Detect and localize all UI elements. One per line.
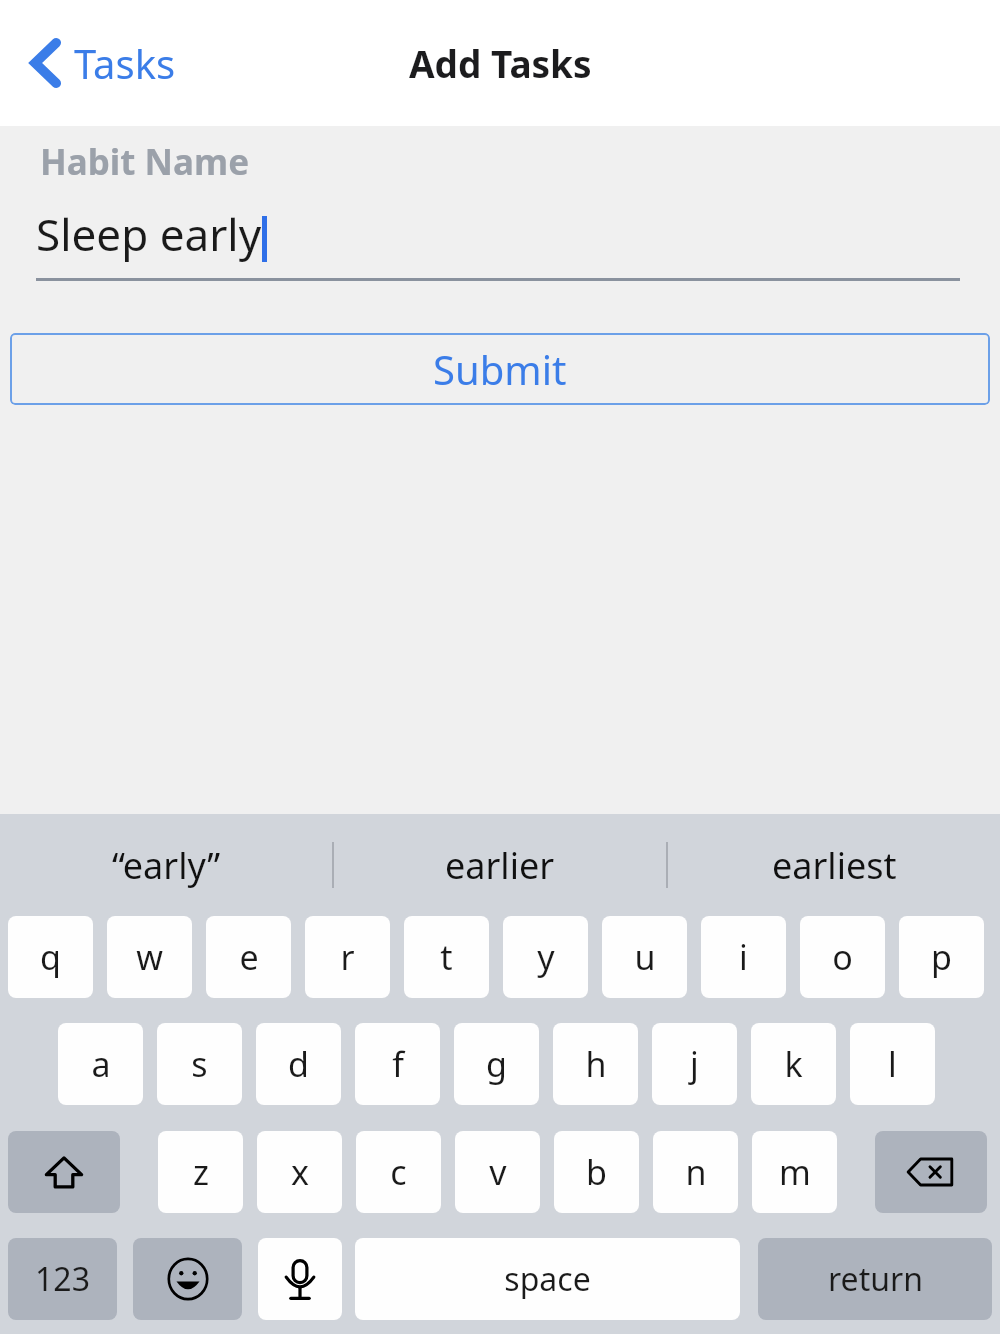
staticText: p bbox=[931, 934, 952, 980]
staticText: return bbox=[828, 1257, 923, 1301]
button[interactable]: h bbox=[553, 1023, 638, 1105]
staticText: w bbox=[136, 934, 163, 980]
staticText: i bbox=[739, 934, 748, 980]
button[interactable]: p bbox=[899, 916, 984, 998]
button[interactable]: space bbox=[355, 1238, 740, 1320]
button[interactable]: Backspace bbox=[875, 1131, 987, 1213]
button[interactable]: a bbox=[58, 1023, 143, 1105]
button[interactable]: return bbox=[758, 1238, 992, 1320]
button[interactable]: earlier bbox=[334, 814, 666, 916]
staticText: Sleep early bbox=[36, 204, 262, 264]
button[interactable]: g bbox=[454, 1023, 539, 1105]
button[interactable]: Shift bbox=[8, 1131, 120, 1213]
button[interactable]: v bbox=[455, 1131, 540, 1213]
staticText: y bbox=[537, 934, 555, 980]
staticText: d bbox=[288, 1041, 309, 1087]
staticText: k bbox=[784, 1041, 803, 1087]
button[interactable]: Dictation bbox=[258, 1238, 342, 1320]
staticText: j bbox=[690, 1041, 699, 1087]
button[interactable]: e bbox=[206, 916, 291, 998]
button[interactable]: i bbox=[701, 916, 786, 998]
staticText: r bbox=[340, 934, 355, 980]
button[interactable]: Emoji bbox=[133, 1238, 242, 1320]
button[interactable]: m bbox=[752, 1131, 837, 1213]
staticText: Habit Name bbox=[40, 138, 250, 186]
staticText: v bbox=[489, 1149, 507, 1195]
staticText: g bbox=[486, 1041, 507, 1087]
button[interactable]: z bbox=[158, 1131, 243, 1213]
staticText: x bbox=[291, 1149, 309, 1195]
staticText: f bbox=[392, 1041, 404, 1087]
button[interactable]: q bbox=[8, 916, 93, 998]
button[interactable]: 123 bbox=[8, 1238, 117, 1320]
button[interactable]: l bbox=[850, 1023, 935, 1105]
staticText: t bbox=[440, 934, 453, 980]
button[interactable]: s bbox=[157, 1023, 242, 1105]
button[interactable]: o bbox=[800, 916, 885, 998]
button[interactable]: Sleep early bbox=[36, 204, 960, 264]
button[interactable]: j bbox=[652, 1023, 737, 1105]
staticText: “early” bbox=[112, 841, 221, 890]
staticText: a bbox=[91, 1041, 111, 1087]
button[interactable]: t bbox=[404, 916, 489, 998]
button[interactable]: c bbox=[356, 1131, 441, 1213]
button[interactable]: f bbox=[355, 1023, 440, 1105]
button[interactable]: “early” bbox=[0, 814, 332, 916]
button[interactable]: y bbox=[503, 916, 588, 998]
staticText: o bbox=[832, 934, 853, 980]
staticText: q bbox=[40, 934, 61, 980]
staticText: e bbox=[239, 934, 259, 980]
button[interactable]: d bbox=[256, 1023, 341, 1105]
staticText: m bbox=[779, 1149, 811, 1195]
button[interactable]: b bbox=[554, 1131, 639, 1213]
staticText: u bbox=[634, 934, 656, 980]
button[interactable]: Submit bbox=[10, 333, 990, 405]
staticText: l bbox=[888, 1041, 897, 1087]
button[interactable]: w bbox=[107, 916, 192, 998]
staticText: c bbox=[390, 1149, 407, 1195]
button[interactable]: n bbox=[653, 1131, 738, 1213]
staticText: Tasks bbox=[74, 36, 176, 90]
button[interactable]: earliest bbox=[668, 814, 1000, 916]
staticText: earliest bbox=[772, 841, 897, 890]
staticText: s bbox=[191, 1041, 208, 1087]
staticText: n bbox=[685, 1149, 707, 1195]
button[interactable]: r bbox=[305, 916, 390, 998]
staticText: z bbox=[193, 1149, 209, 1195]
staticText: 123 bbox=[35, 1257, 90, 1301]
staticText: Add Tasks bbox=[409, 38, 592, 88]
staticText: h bbox=[585, 1041, 607, 1087]
staticText: earlier bbox=[445, 841, 555, 890]
staticText: space bbox=[504, 1257, 591, 1301]
staticText: b bbox=[586, 1149, 607, 1195]
button[interactable]: Tasks bbox=[30, 36, 176, 90]
staticText: Submit bbox=[433, 342, 567, 396]
button[interactable]: x bbox=[257, 1131, 342, 1213]
button[interactable]: u bbox=[602, 916, 687, 998]
button[interactable]: k bbox=[751, 1023, 836, 1105]
